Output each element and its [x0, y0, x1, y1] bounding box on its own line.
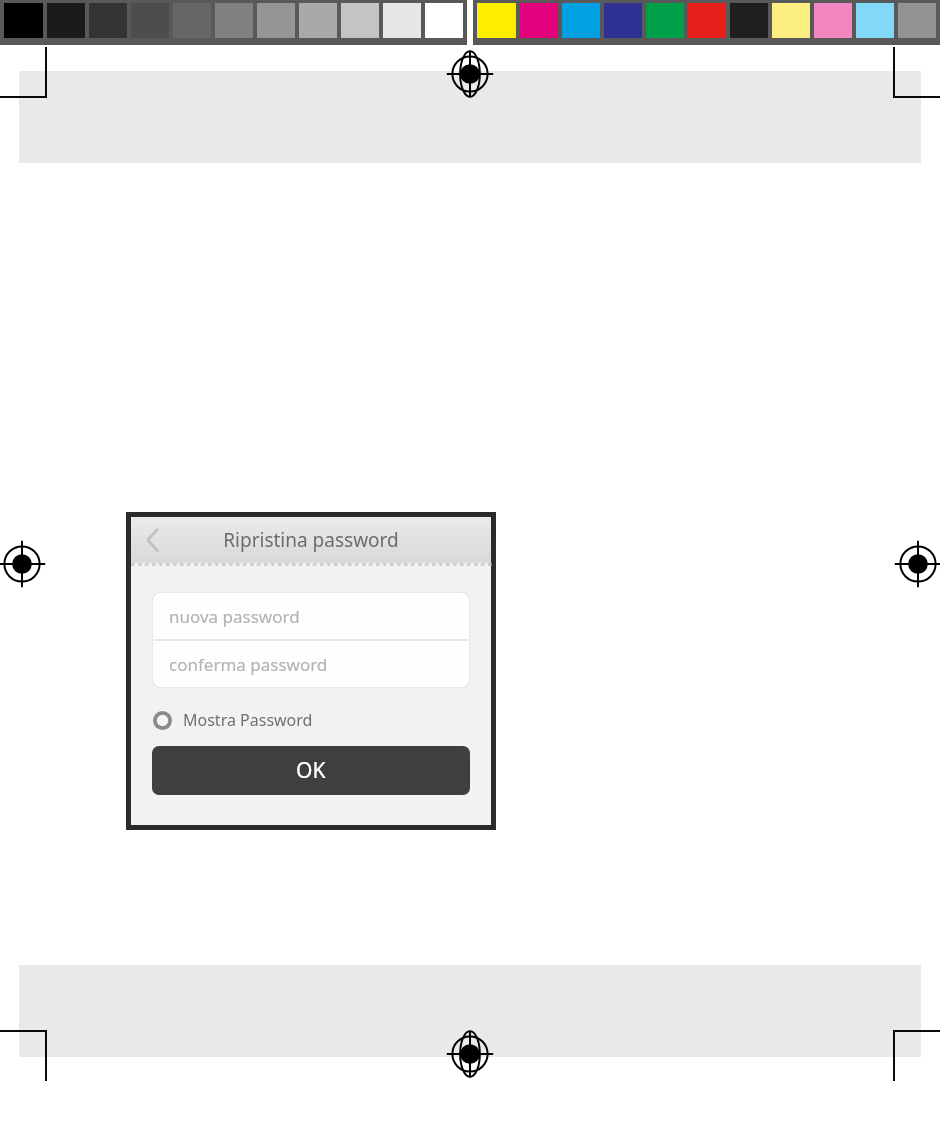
staticText: OK	[296, 756, 326, 785]
button[interactable]: Indietro	[131, 517, 175, 563]
staticText: conferma password	[169, 653, 328, 676]
button[interactable]: conferma password	[152, 640, 470, 688]
button[interactable]: Mostra Password	[152, 702, 313, 738]
staticText: nuova password	[169, 605, 300, 628]
button[interactable]: OK	[152, 746, 470, 795]
button[interactable]: nuova password	[152, 592, 470, 640]
staticText: Mostra Password	[183, 709, 313, 731]
staticText: Ripristina password	[223, 527, 399, 553]
